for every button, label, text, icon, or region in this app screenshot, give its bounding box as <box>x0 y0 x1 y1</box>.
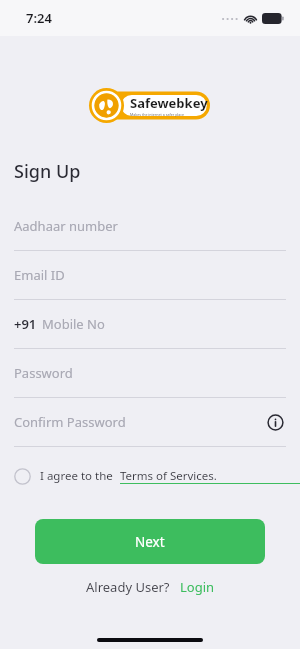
button[interactable]: Aadhaar number <box>0 202 300 251</box>
button[interactable]: Password <box>0 349 300 398</box>
button[interactable]: Email ID <box>0 251 300 300</box>
staticText: Sign Up <box>14 159 81 184</box>
staticText: Login <box>180 578 215 596</box>
staticText: Password <box>14 364 73 382</box>
staticText: Aadhaar number <box>14 217 118 235</box>
staticText: 7:24 <box>26 9 52 27</box>
staticText: Makes the internet a safer place <box>130 112 185 117</box>
staticText: Mobile No <box>42 315 105 333</box>
staticText: Terms of Services. <box>120 468 217 484</box>
staticText: Confirm Password <box>14 413 126 431</box>
button[interactable]: Confirm Password <box>0 398 300 447</box>
staticText: Safewebkey <box>130 94 208 112</box>
button[interactable]: I agree to the <box>14 459 300 493</box>
button[interactable]: Next <box>35 519 265 564</box>
button[interactable]: Login <box>180 578 215 596</box>
button[interactable]: Terms of Services. <box>120 468 300 485</box>
staticText: +91 <box>14 315 37 333</box>
button[interactable]: +91 <box>0 300 300 349</box>
staticText: I agree to the <box>40 468 113 484</box>
staticText: Email ID <box>14 266 65 284</box>
staticText: Already User? <box>86 578 170 596</box>
button[interactable]: Password requirements info <box>264 411 286 433</box>
staticText: Next <box>135 533 165 551</box>
